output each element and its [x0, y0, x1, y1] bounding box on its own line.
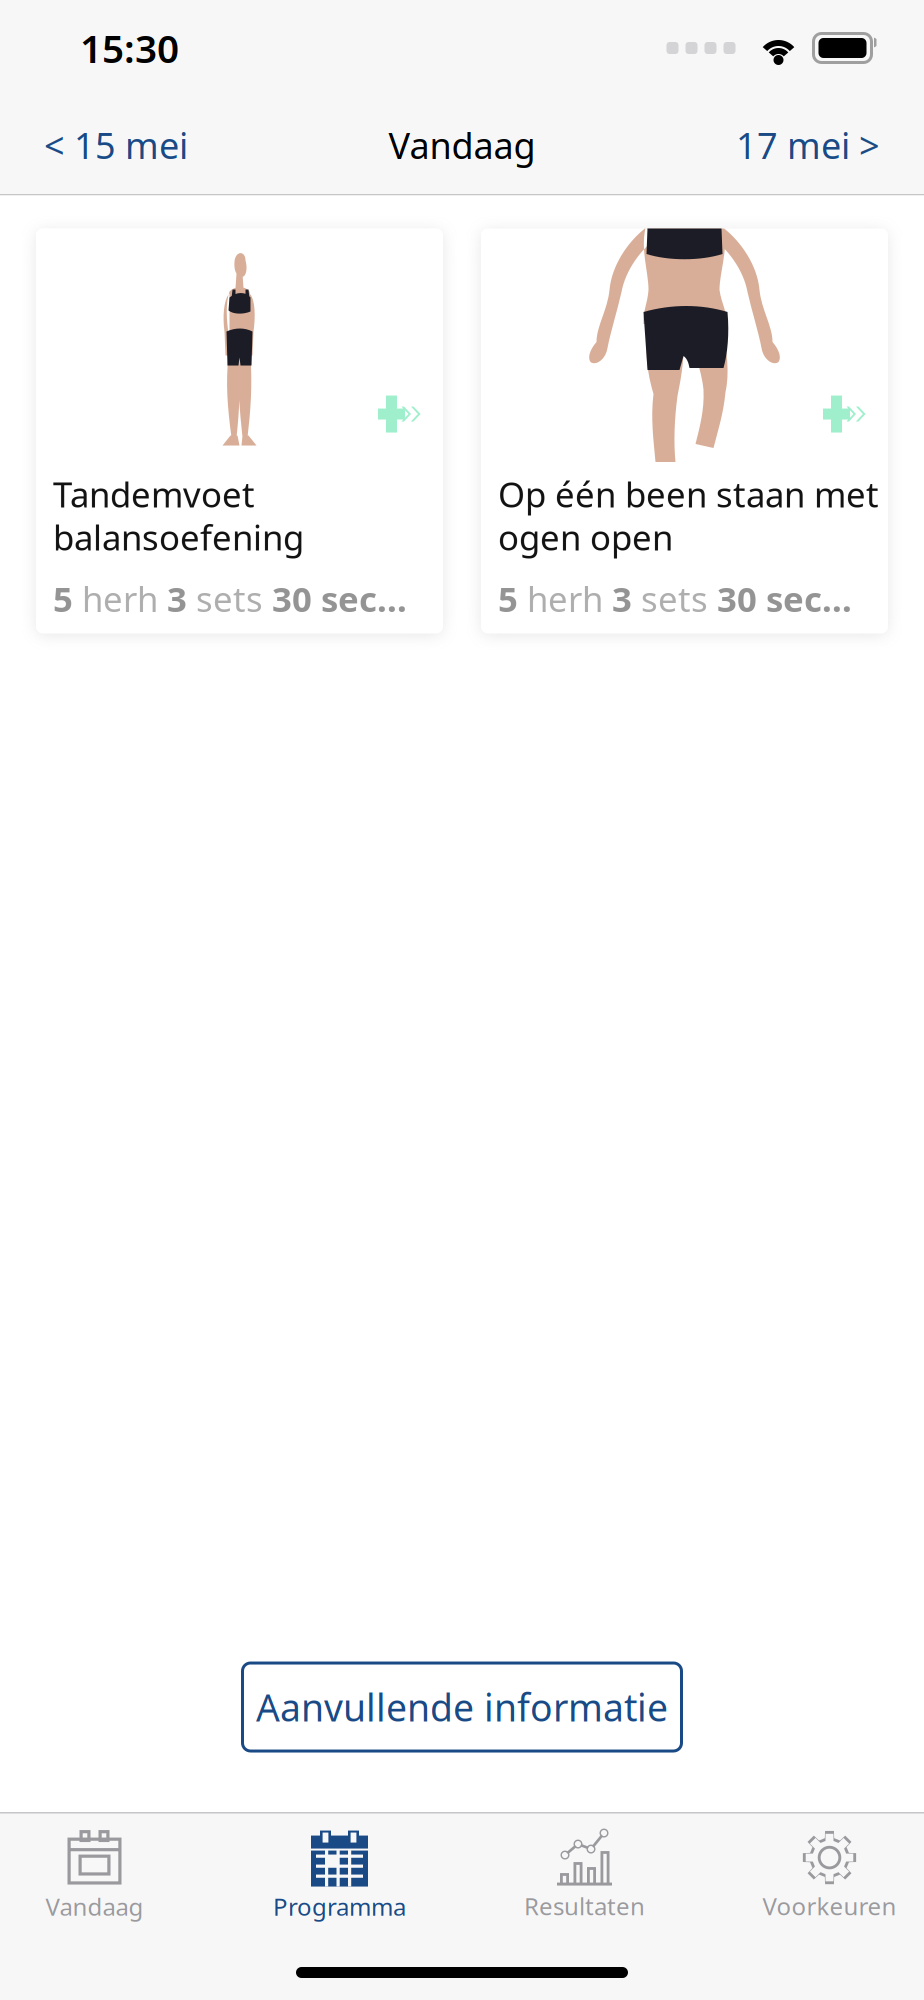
button[interactable]: 17 mei >	[728, 107, 888, 183]
staticText: herh	[82, 575, 167, 621]
button[interactable]: Op één been staan met	[481, 228, 888, 633]
staticText: herh	[527, 575, 612, 621]
staticText: 5	[53, 575, 82, 621]
staticText: Aanvullende informatie	[256, 1682, 668, 1732]
staticText: Vandaag	[388, 121, 535, 169]
staticText: 17 mei >	[736, 121, 880, 169]
staticText: Tandemvoet	[53, 471, 255, 517]
staticText: Resultaten	[524, 1890, 645, 1922]
staticText: Vandaag	[45, 1891, 143, 1922]
staticText: 3	[612, 575, 641, 621]
staticText: Op één been staan met	[498, 471, 879, 517]
staticText: Programma	[273, 1891, 406, 1922]
staticText: 30 sec...	[272, 575, 407, 621]
button[interactable]: Programma	[245, 1823, 433, 1926]
staticText: sets	[641, 575, 717, 621]
staticText: 30 sec...	[717, 575, 852, 621]
button[interactable]: Tandemvoet	[36, 228, 443, 633]
staticText: balansoefening	[53, 514, 304, 560]
staticText: 3	[167, 575, 196, 621]
button[interactable]: Resultaten	[490, 1823, 678, 1926]
staticText: ogen open	[498, 514, 673, 560]
button[interactable]: Aanvullende informatie	[242, 1663, 681, 1751]
staticText: < 15 mei	[44, 121, 188, 169]
staticText: 5	[498, 575, 527, 621]
button[interactable]: < 15 mei	[36, 107, 196, 183]
button[interactable]: Vandaag	[0, 1823, 188, 1926]
staticText: 15:30	[80, 22, 179, 74]
staticText: Voorkeuren	[762, 1890, 896, 1922]
staticText: sets	[196, 575, 272, 621]
button[interactable]: Voorkeuren	[735, 1823, 923, 1926]
